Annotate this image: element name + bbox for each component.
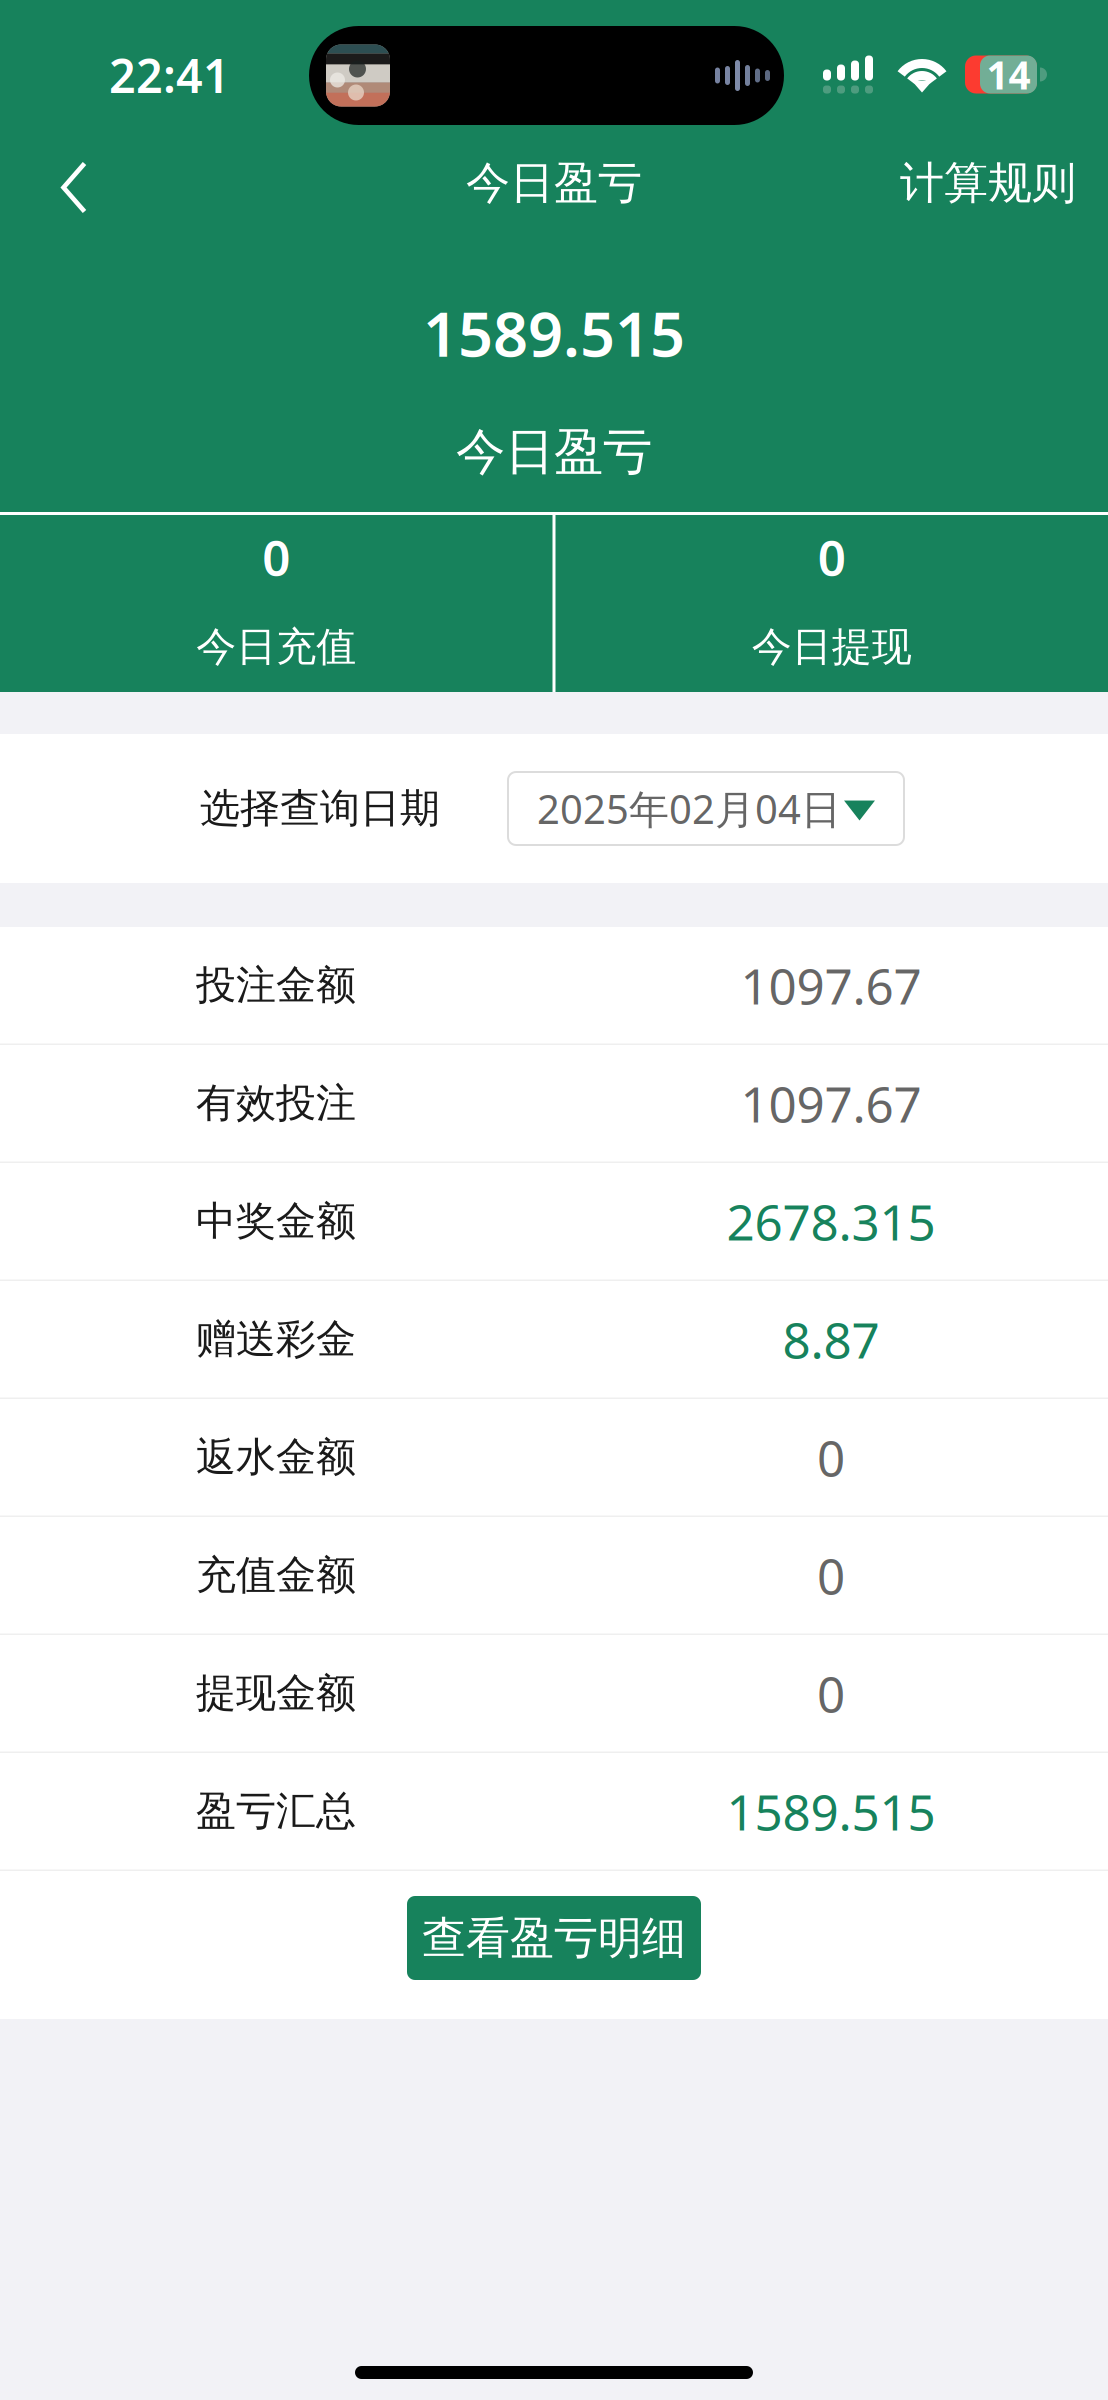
staticText: 1097.67	[740, 952, 921, 1018]
staticText: 盈亏汇总	[196, 1787, 356, 1836]
staticText: 22:41	[109, 44, 230, 106]
staticText: 今日盈亏	[456, 422, 652, 482]
staticText: 赠送彩金	[196, 1315, 356, 1364]
staticText: 今日充值	[196, 622, 356, 671]
staticText: 1097.67	[740, 1070, 921, 1136]
staticText: 充值金额	[196, 1551, 356, 1600]
staticText: 有效投注	[196, 1079, 356, 1128]
staticText: 今日提现	[752, 622, 912, 671]
staticText: 计算规则	[900, 156, 1076, 210]
staticText: 1589.515	[423, 292, 685, 374]
staticText: 14	[986, 49, 1030, 100]
staticText: 0	[817, 1542, 845, 1608]
staticText: 提现金额	[196, 1669, 356, 1718]
staticText: 0	[262, 524, 290, 590]
button[interactable]: 计算规则	[872, 133, 1108, 233]
staticText: 2678.315	[726, 1188, 935, 1254]
staticText: 今日盈亏	[466, 156, 642, 210]
staticText: 0	[817, 1424, 845, 1490]
button[interactable]: Back	[0, 133, 146, 233]
staticText: 返水金额	[196, 1433, 356, 1482]
staticText: 选择查询日期	[200, 784, 440, 833]
staticText: 0	[818, 524, 846, 590]
staticText: 查看盈亏明细	[422, 1911, 686, 1965]
staticText: 2025年02月04日	[537, 782, 841, 835]
staticText: 1589.515	[726, 1778, 935, 1844]
staticText: 8.87	[782, 1306, 879, 1372]
button[interactable]: 2025年02月04日	[508, 772, 904, 845]
button[interactable]: 查看盈亏明细	[407, 1896, 701, 1980]
staticText: 投注金额	[196, 961, 356, 1010]
staticText: 中奖金额	[196, 1197, 356, 1246]
staticText: 0	[817, 1660, 845, 1726]
